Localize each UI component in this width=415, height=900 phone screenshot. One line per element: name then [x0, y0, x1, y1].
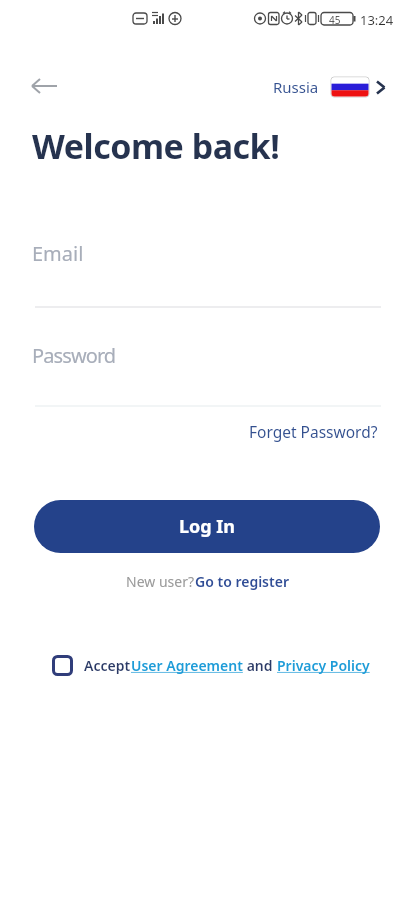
staticText: Log In — [179, 514, 236, 539]
button[interactable] — [22, 68, 66, 104]
staticText: Password — [32, 342, 116, 369]
staticText: New user? — [126, 572, 195, 591]
staticText: Russia — [273, 77, 319, 97]
button[interactable]: Log In — [34, 500, 380, 553]
button[interactable] — [52, 655, 73, 676]
button[interactable]: Forget Password? — [249, 421, 378, 442]
staticText: 13:24 — [360, 11, 394, 29]
button[interactable]: Russia — [265, 73, 390, 101]
button[interactable]: Go to register — [195, 572, 289, 591]
staticText: and — [243, 656, 277, 675]
staticText: 45 — [329, 13, 341, 27]
staticText: Email — [32, 240, 84, 267]
button[interactable]: Privacy Policy — [277, 656, 370, 675]
staticText: Accept — [84, 656, 131, 675]
button[interactable]: User Agreement — [131, 656, 243, 675]
staticText: Welcome back! — [32, 123, 280, 169]
